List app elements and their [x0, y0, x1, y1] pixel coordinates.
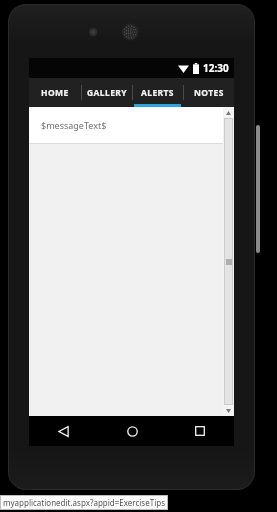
staticText: NOTES: [194, 87, 224, 99]
other: Scroll bar: [223, 107, 234, 416]
button[interactable]: Scroll up: [223, 107, 234, 118]
button[interactable]: ALERTS: [132, 78, 183, 107]
button[interactable]: Back: [34, 416, 92, 446]
button[interactable]: HOME: [29, 78, 81, 107]
staticText: $messageText$: [41, 119, 107, 131]
staticText: myapplicationedit.aspx?appid=ExerciseTip…: [3, 497, 165, 508]
staticText: ALERTS: [141, 87, 174, 99]
staticText: GALLERY: [87, 87, 127, 99]
staticText: HOME: [41, 87, 69, 99]
button[interactable]: Recent apps: [171, 416, 229, 446]
button[interactable]: GALLERY: [81, 78, 132, 107]
button[interactable]: $messageText$: [29, 107, 223, 143]
button[interactable]: Scroll down: [223, 405, 234, 416]
button[interactable]: NOTES: [183, 78, 234, 107]
staticText: 12:30: [203, 61, 229, 75]
button[interactable]: Home: [103, 416, 161, 446]
